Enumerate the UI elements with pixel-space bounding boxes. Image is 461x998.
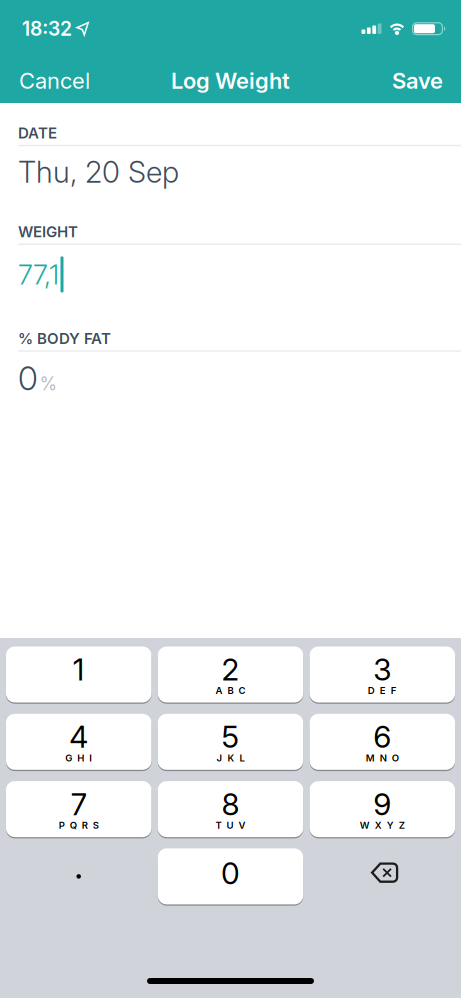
staticText: 3	[373, 651, 391, 688]
staticText: GHI	[65, 752, 92, 764]
staticText: 18:32	[22, 17, 72, 40]
staticText: 5	[221, 719, 239, 755]
button[interactable]: 0	[158, 848, 303, 904]
staticText: JKL	[216, 752, 244, 764]
button[interactable]: 5	[158, 714, 303, 770]
staticText: 7	[71, 786, 87, 822]
button[interactable]: 7	[6, 781, 151, 837]
staticText: 9	[373, 786, 391, 822]
button[interactable]: Decimal separator	[6, 848, 151, 904]
staticText: 8	[221, 786, 239, 822]
button[interactable]: 8	[158, 781, 303, 837]
button[interactable]: Save	[392, 67, 443, 94]
staticText: Log Weight	[171, 67, 290, 94]
staticText: %	[39, 373, 57, 395]
staticText: 2	[221, 651, 239, 688]
staticText: Thu, 20 Sep	[18, 154, 179, 190]
button[interactable]: % BODY FAT	[0, 329, 461, 398]
staticText: MNO	[366, 752, 399, 764]
staticText: Cancel	[19, 67, 90, 94]
staticText: PQRS	[59, 819, 99, 831]
staticText: Save	[392, 67, 443, 94]
staticText: WEIGHT	[18, 223, 78, 241]
staticText: % BODY FAT	[18, 329, 111, 348]
button[interactable]: Cancel	[19, 67, 90, 94]
staticText: 77,1	[18, 258, 59, 291]
button[interactable]: WEIGHT	[0, 223, 461, 292]
button[interactable]: DATE	[0, 124, 461, 190]
button[interactable]: 4	[6, 714, 151, 770]
staticText: 4	[69, 719, 88, 755]
button[interactable]: Delete	[309, 848, 455, 904]
staticText: DEF	[368, 685, 397, 696]
staticText: WXYZ	[360, 819, 405, 831]
staticText: 0	[221, 855, 240, 892]
staticText: TUV	[215, 819, 245, 831]
button[interactable]: 9	[309, 781, 455, 837]
staticText: DATE	[18, 124, 57, 142]
staticText: 0	[18, 359, 38, 398]
button[interactable]: 6	[309, 714, 455, 770]
button[interactable]: 2	[158, 646, 303, 702]
staticText: 1	[73, 651, 85, 688]
button[interactable]: 1	[6, 646, 151, 702]
staticText: ABC	[215, 685, 245, 696]
button[interactable]: 3	[309, 646, 455, 702]
staticText: 6	[373, 719, 391, 755]
